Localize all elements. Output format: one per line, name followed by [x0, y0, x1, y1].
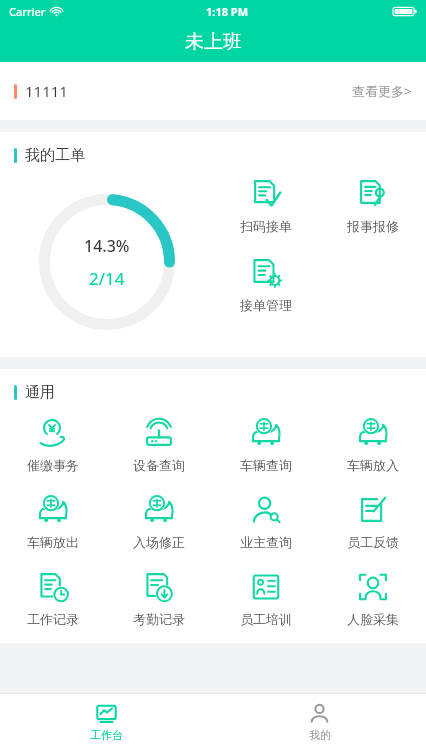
button[interactable]: 入场修正: [106, 491, 212, 552]
staticText: 未上班: [185, 30, 242, 54]
staticText: 员工培训: [240, 611, 292, 627]
button[interactable]: 工作记录: [0, 568, 106, 629]
staticText: 业主查询: [240, 534, 292, 550]
button[interactable]: 设备查询: [106, 414, 212, 475]
staticText: Carrier: [9, 4, 46, 19]
button[interactable]: 11111: [0, 62, 426, 120]
staticText: 催缴事务: [27, 457, 79, 473]
staticText: 工作记录: [27, 611, 79, 627]
staticText: 设备查询: [133, 457, 185, 473]
button[interactable]: 报事报修: [319, 175, 426, 236]
button[interactable]: 我的: [213, 694, 426, 749]
button[interactable]: 车辆放出: [0, 491, 106, 552]
button[interactable]: 员工反馈: [319, 491, 426, 552]
button[interactable]: 工作台: [0, 694, 213, 749]
staticText: 报事报修: [347, 218, 399, 234]
button[interactable]: 催缴事务: [0, 414, 106, 475]
button[interactable]: 考勤记录: [106, 568, 212, 629]
staticText: 2/14: [89, 267, 125, 290]
staticText: 14.3%: [84, 235, 130, 257]
staticText: 车辆查询: [240, 457, 292, 473]
staticText: 车辆放入: [347, 457, 399, 473]
staticText: 1:18 PM: [206, 4, 249, 19]
staticText: 通用: [25, 383, 55, 402]
staticText: 接单管理: [240, 297, 292, 313]
staticText: 考勤记录: [133, 611, 185, 627]
staticText: 查看更多>: [352, 82, 412, 100]
staticText: 员工反馈: [347, 534, 399, 550]
staticText: 工作台: [90, 728, 123, 742]
button[interactable]: 车辆放入: [319, 414, 426, 475]
staticText: 我的工单: [25, 146, 85, 165]
staticText: 人脸采集: [347, 611, 399, 627]
button[interactable]: 人脸采集: [319, 568, 426, 629]
button[interactable]: 接单管理: [213, 254, 319, 315]
staticText: 扫码接单: [240, 218, 292, 234]
staticText: 入场修正: [133, 534, 185, 550]
staticText: 11111: [25, 81, 68, 101]
button[interactable]: 员工培训: [212, 568, 319, 629]
staticText: 我的: [309, 728, 331, 742]
staticText: 车辆放出: [27, 534, 79, 550]
button[interactable]: 业主查询: [212, 491, 319, 552]
button[interactable]: 车辆查询: [212, 414, 319, 475]
button[interactable]: 扫码接单: [213, 175, 319, 236]
